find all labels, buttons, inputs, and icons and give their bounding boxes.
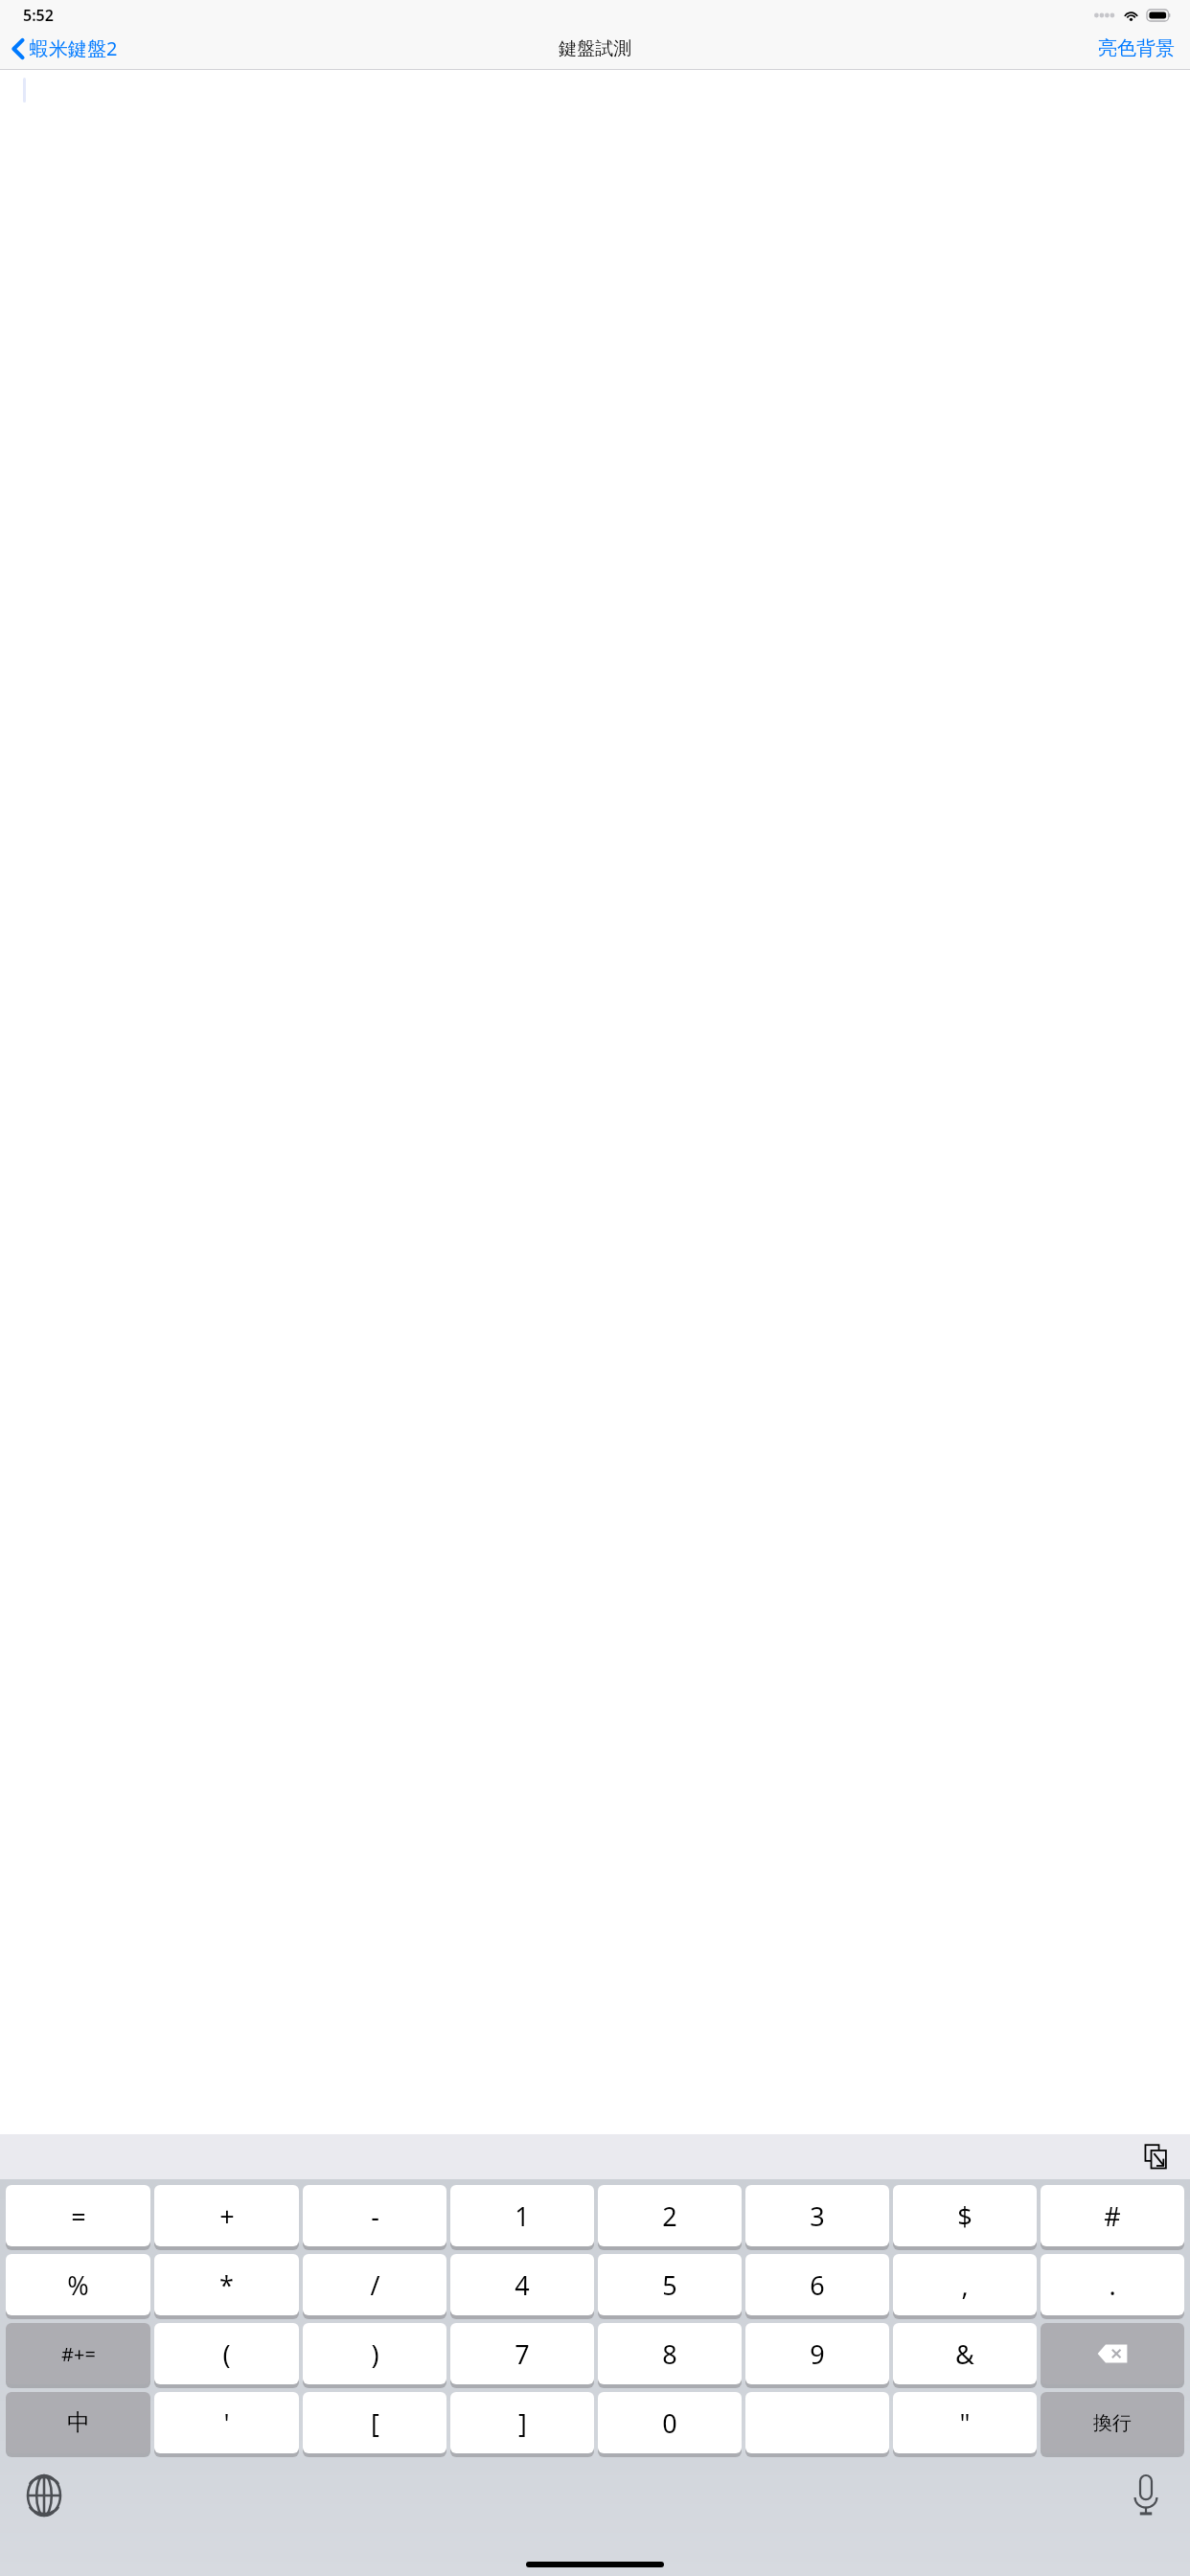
- button[interactable]: =: [6, 2185, 150, 2246]
- staticText: [: [371, 2405, 379, 2441]
- staticText: 5:52: [23, 5, 54, 26]
- button[interactable]: ': [154, 2392, 299, 2453]
- staticText: 3: [810, 2198, 825, 2234]
- button[interactable]: 8: [598, 2323, 742, 2384]
- staticText: 1: [515, 2198, 530, 2234]
- staticText: 8: [662, 2336, 677, 2372]
- staticText: ': [223, 2405, 230, 2441]
- staticText: %: [67, 2267, 89, 2303]
- staticText: =: [71, 2198, 86, 2234]
- staticText: 6: [810, 2267, 825, 2303]
- button[interactable]: 3: [745, 2185, 889, 2246]
- button[interactable]: Delete: [1041, 2323, 1184, 2384]
- staticText: /: [370, 2267, 380, 2303]
- button[interactable]: *: [154, 2254, 299, 2315]
- staticText: 9: [810, 2336, 825, 2372]
- button[interactable]: ,: [893, 2254, 1037, 2315]
- button[interactable]: 5: [598, 2254, 742, 2315]
- button[interactable]: 7: [450, 2323, 594, 2384]
- button[interactable]: 0: [598, 2392, 742, 2453]
- button[interactable]: 9: [745, 2323, 889, 2384]
- staticText: 7: [515, 2336, 530, 2372]
- button[interactable]: Dictation: [1119, 2469, 1173, 2522]
- button[interactable]: ]: [450, 2392, 594, 2453]
- button[interactable]: ": [893, 2392, 1037, 2453]
- staticText: 2: [662, 2198, 677, 2234]
- staticText: 中: [67, 2408, 90, 2437]
- staticText: *: [219, 2267, 234, 2303]
- button[interactable]: ): [303, 2323, 446, 2384]
- button[interactable]: Resize keyboard: [1136, 2138, 1175, 2176]
- staticText: 0: [662, 2405, 677, 2441]
- staticText: 鍵盤試測: [559, 37, 631, 60]
- button[interactable]: 換行: [1041, 2392, 1184, 2453]
- staticText: 5: [662, 2267, 677, 2303]
- button[interactable]: .: [1041, 2254, 1184, 2315]
- button[interactable]: 6: [745, 2254, 889, 2315]
- button[interactable]: 2: [598, 2185, 742, 2246]
- staticText: #: [1104, 2198, 1121, 2234]
- button[interactable]: #+=: [6, 2323, 150, 2384]
- staticText: ": [959, 2405, 971, 2441]
- staticText: 換行: [1093, 2411, 1132, 2435]
- staticText: ): [371, 2336, 379, 2372]
- button[interactable]: %: [6, 2254, 150, 2315]
- staticText: (: [222, 2336, 231, 2372]
- button[interactable]: 中: [6, 2392, 150, 2453]
- button[interactable]: $: [893, 2185, 1037, 2246]
- staticText: &: [955, 2336, 974, 2372]
- staticText: #+=: [61, 2341, 96, 2367]
- staticText: 亮色背景: [1098, 36, 1175, 60]
- button[interactable]: 蝦米鍵盤2: [8, 32, 126, 65]
- staticText: 蝦米鍵盤2: [30, 35, 118, 61]
- button[interactable]: +: [154, 2185, 299, 2246]
- staticText: -: [371, 2198, 379, 2234]
- staticText: +: [219, 2198, 235, 2234]
- button[interactable]: Switch keyboard: [17, 2469, 71, 2522]
- button[interactable]: (: [154, 2323, 299, 2384]
- button[interactable]: 1: [450, 2185, 594, 2246]
- button[interactable]: 亮色背景: [1092, 31, 1180, 66]
- button[interactable]: 4: [450, 2254, 594, 2315]
- button[interactable]: -: [303, 2185, 446, 2246]
- staticText: ,: [961, 2267, 969, 2303]
- button[interactable]: [: [303, 2392, 446, 2453]
- staticText: 4: [515, 2267, 530, 2303]
- button[interactable]: #: [1041, 2185, 1184, 2246]
- staticText: .: [1109, 2267, 1116, 2303]
- button[interactable]: [745, 2392, 889, 2453]
- button[interactable]: &: [893, 2323, 1037, 2384]
- staticText: $: [957, 2198, 973, 2234]
- staticText: ]: [518, 2405, 527, 2441]
- button[interactable]: /: [303, 2254, 446, 2315]
